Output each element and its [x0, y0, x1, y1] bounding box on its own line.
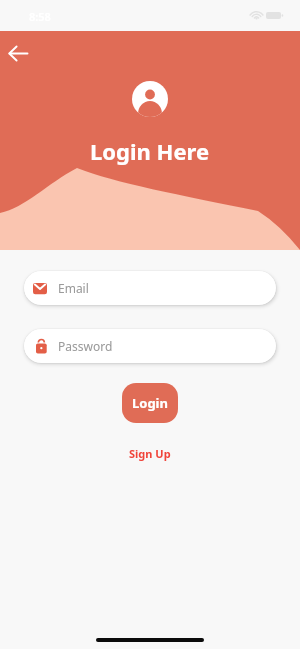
button[interactable]: Email: [24, 271, 276, 305]
button[interactable]: Sign Up: [123, 445, 177, 462]
button[interactable]: Password: [24, 329, 276, 363]
staticText: Login: [132, 394, 168, 412]
staticText: Password: [58, 338, 113, 354]
staticText: Login Here: [90, 136, 210, 166]
staticText: Sign Up: [129, 446, 171, 461]
staticText: Email: [58, 280, 89, 296]
button[interactable]: Login: [122, 383, 178, 423]
